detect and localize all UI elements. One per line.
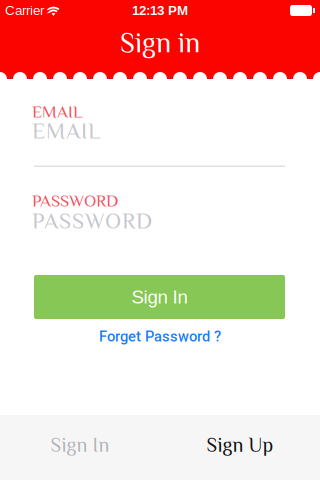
staticText: 12:13 PM — [132, 3, 188, 18]
staticText: Sign In — [131, 287, 187, 307]
staticText: Carrier — [5, 3, 44, 18]
staticText: Sign in — [120, 27, 200, 58]
staticText: EMAIL — [32, 118, 101, 143]
button[interactable]: Sign In — [34, 275, 285, 319]
button[interactable]: Sign Up — [160, 415, 320, 480]
staticText: Sign Up — [206, 434, 273, 456]
staticText: EMAIL — [32, 102, 83, 121]
staticText: PASSWORD — [32, 191, 118, 210]
staticText: PASSWORD — [32, 208, 152, 233]
button[interactable]: Sign In — [0, 415, 160, 480]
staticText: Forget Password ? — [99, 328, 221, 345]
button[interactable]: Forget Password ? — [0, 328, 320, 345]
staticText: Sign In — [50, 434, 109, 456]
